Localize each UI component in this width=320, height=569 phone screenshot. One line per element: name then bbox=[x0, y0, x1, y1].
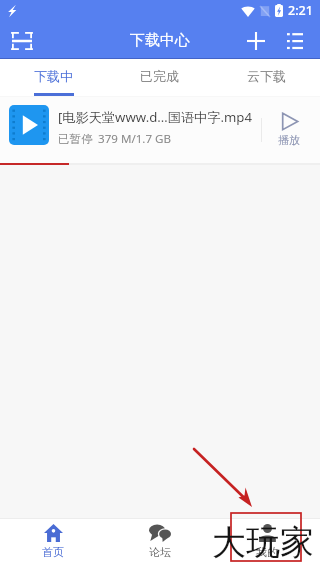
staticText: 下载中心 bbox=[130, 31, 190, 50]
staticText: 云下载 bbox=[247, 68, 286, 84]
staticText: 2:21 bbox=[288, 2, 313, 19]
button[interactable]: 已完成 bbox=[106, 59, 213, 96]
button[interactable]: 论坛 bbox=[106, 519, 213, 569]
button[interactable]: Scan bbox=[8, 27, 36, 55]
staticText: [电影天堂www.d…国语中字.mp4 bbox=[58, 108, 253, 126]
staticText: 论坛 bbox=[149, 545, 171, 559]
staticText: 首页 bbox=[42, 545, 64, 559]
button[interactable]: 播放 bbox=[262, 97, 320, 163]
button[interactable]: Add download bbox=[241, 26, 271, 56]
button[interactable]: 我的 bbox=[213, 519, 320, 569]
staticText: 下载中 bbox=[34, 68, 73, 84]
button[interactable]: 云下载 bbox=[213, 59, 320, 96]
staticText: 大玩家 bbox=[212, 521, 314, 564]
staticText: 已暂停 bbox=[58, 132, 93, 147]
staticText: 已完成 bbox=[140, 68, 179, 84]
button[interactable]: 下载中 bbox=[0, 59, 106, 96]
button[interactable]: 首页 bbox=[0, 519, 106, 569]
button[interactable]: Menu bbox=[280, 25, 310, 55]
staticText: 播放 bbox=[278, 133, 300, 147]
staticText: 379 M/1.7 GB bbox=[98, 131, 172, 147]
staticText: 我的 bbox=[256, 545, 278, 559]
button[interactable]: [电影天堂www.d…国语中字.mp4 bbox=[0, 97, 320, 163]
